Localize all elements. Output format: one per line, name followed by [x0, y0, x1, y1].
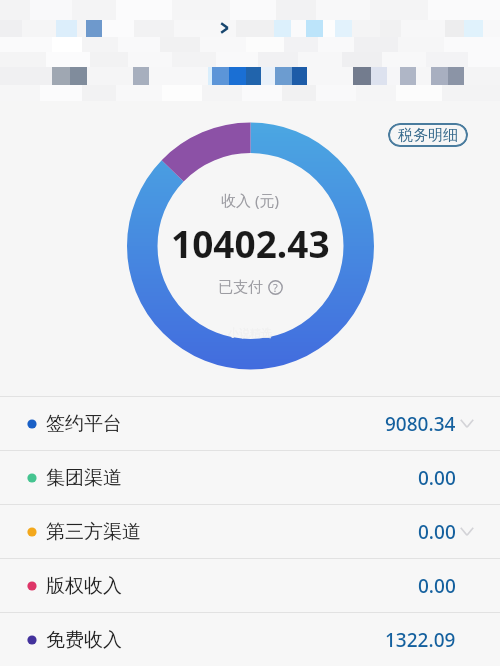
button[interactable]: Help: [268, 280, 283, 295]
staticText: 签约平台: [46, 412, 122, 436]
staticText: 0.00: [418, 573, 456, 599]
staticText: 免费收入: [46, 628, 122, 652]
button[interactable]: More: [210, 14, 238, 42]
staticText: 收入 (元): [221, 190, 279, 210]
staticText: 小说精选: [228, 326, 272, 340]
staticText: 10402.43: [171, 218, 330, 268]
staticText: 0.00: [418, 465, 456, 491]
staticText: 已支付: [218, 278, 263, 297]
staticText: ?: [273, 280, 278, 295]
staticText: 第三方渠道: [46, 520, 141, 544]
staticText: 1322.09: [385, 627, 456, 653]
staticText: 9080.34: [385, 411, 456, 437]
button[interactable]: 签约平台: [0, 397, 500, 450]
button[interactable]: 集团渠道: [0, 451, 500, 504]
button[interactable]: 版权收入: [0, 559, 500, 612]
button[interactable]: 免费收入: [0, 613, 500, 666]
button[interactable]: 税务明细: [388, 123, 468, 147]
staticText: 版权收入: [46, 574, 122, 598]
button[interactable]: 第三方渠道: [0, 505, 500, 558]
staticText: 0.00: [418, 519, 456, 545]
staticText: 税务明细: [398, 126, 458, 145]
staticText: 集团渠道: [46, 466, 122, 490]
